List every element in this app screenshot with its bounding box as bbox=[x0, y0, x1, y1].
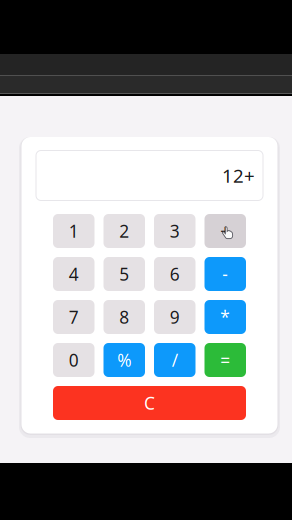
button[interactable]: - bbox=[204, 257, 246, 291]
button[interactable]: 5 bbox=[103, 257, 145, 291]
button[interactable]: 6 bbox=[154, 257, 195, 291]
staticText: 5 bbox=[119, 262, 129, 285]
staticText: + bbox=[220, 219, 230, 242]
button[interactable]: 1 bbox=[53, 214, 94, 248]
staticText: * bbox=[220, 305, 230, 328]
button[interactable]: + bbox=[204, 214, 246, 248]
staticText: 1 bbox=[69, 219, 79, 242]
staticText: 3 bbox=[170, 219, 180, 242]
button[interactable]: 2 bbox=[103, 214, 145, 248]
staticText: = bbox=[220, 348, 230, 371]
staticText: 9 bbox=[170, 305, 180, 328]
staticText: 6 bbox=[170, 262, 180, 285]
button[interactable]: 9 bbox=[154, 300, 195, 334]
staticText: % bbox=[117, 348, 131, 371]
button[interactable]: / bbox=[154, 343, 195, 377]
staticText: 0 bbox=[69, 348, 79, 371]
staticText: 8 bbox=[119, 305, 129, 328]
staticText: / bbox=[172, 348, 178, 371]
button[interactable]: * bbox=[204, 300, 246, 334]
staticText: 4 bbox=[69, 262, 79, 285]
button[interactable]: 8 bbox=[103, 300, 145, 334]
button[interactable]: C bbox=[53, 386, 246, 420]
button[interactable]: 7 bbox=[53, 300, 94, 334]
staticText: 2 bbox=[119, 219, 129, 242]
staticText: C bbox=[144, 391, 155, 414]
staticText: - bbox=[222, 262, 228, 285]
button[interactable]: 3 bbox=[154, 214, 195, 248]
button[interactable]: 4 bbox=[53, 257, 94, 291]
button[interactable]: 0 bbox=[53, 343, 94, 377]
button[interactable]: % bbox=[103, 343, 145, 377]
staticText: 12+ bbox=[222, 163, 255, 188]
staticText: 7 bbox=[69, 305, 79, 328]
button[interactable]: = bbox=[204, 343, 246, 377]
